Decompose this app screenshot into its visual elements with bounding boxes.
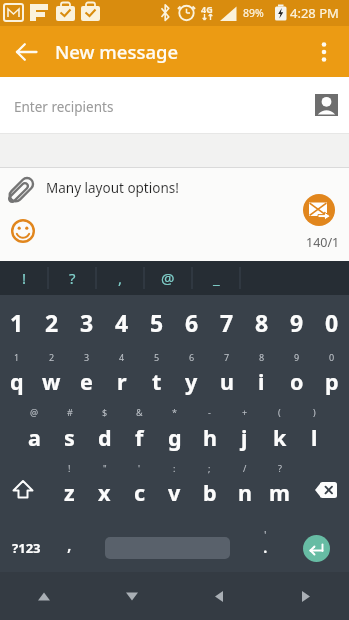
button[interactable]: "	[87, 461, 122, 516]
staticText: .	[263, 535, 268, 558]
staticText: +	[242, 406, 248, 418]
button[interactable]: 9	[279, 350, 314, 405]
staticText: ?	[278, 462, 282, 474]
button[interactable]: &	[122, 405, 157, 461]
button[interactable]: 1	[0, 350, 34, 405]
button[interactable]: 3	[69, 295, 104, 350]
staticText: g	[168, 423, 182, 452]
staticText: 5	[154, 351, 160, 363]
button[interactable]	[303, 194, 335, 226]
staticText: _	[213, 268, 220, 288]
button[interactable]: 5	[139, 295, 174, 350]
button[interactable]: 7	[209, 350, 244, 405]
staticText: i	[258, 367, 265, 396]
button[interactable]: *	[157, 405, 192, 461]
staticText: c	[134, 478, 146, 507]
button[interactable]: 5	[139, 350, 174, 405]
button[interactable]: 0	[314, 295, 349, 350]
button[interactable]	[309, 37, 339, 67]
button[interactable]: @	[17, 405, 52, 461]
staticText: -	[208, 406, 211, 418]
button[interactable]	[7, 174, 35, 206]
button[interactable]: '	[248, 516, 283, 572]
button[interactable]	[314, 93, 338, 117]
staticText: a	[28, 423, 41, 452]
button[interactable]	[11, 219, 35, 243]
button[interactable]: 3	[69, 350, 104, 405]
staticText: ,	[67, 533, 72, 556]
staticText: z	[64, 478, 75, 507]
staticText: (	[278, 406, 281, 418]
button[interactable]: !	[52, 461, 87, 516]
button[interactable]: 6	[174, 295, 209, 350]
button[interactable]: 2	[34, 350, 69, 405]
staticText: 9	[294, 351, 300, 363]
button[interactable]: 1	[0, 295, 34, 350]
button[interactable]	[88, 572, 175, 620]
button[interactable]: '	[122, 461, 157, 516]
button[interactable]: ,	[52, 516, 87, 572]
button[interactable]: @	[144, 261, 192, 295]
button[interactable]: ,	[96, 261, 144, 295]
button[interactable]	[0, 461, 52, 516]
staticText: q	[10, 367, 24, 396]
staticText: &	[136, 406, 143, 418]
staticText: 8	[255, 307, 269, 338]
button[interactable]: 4	[104, 295, 139, 350]
button[interactable]	[8, 33, 46, 71]
button[interactable]	[303, 535, 330, 562]
button[interactable]: $	[87, 405, 122, 461]
button[interactable]: 4	[104, 350, 139, 405]
button[interactable]: ?123	[0, 516, 52, 572]
staticText: p	[325, 367, 339, 396]
button[interactable]: ?	[262, 461, 297, 516]
button[interactable]: +	[227, 405, 262, 461]
staticText: 1	[10, 307, 24, 338]
button[interactable]: 2	[34, 295, 69, 350]
staticText: 3	[80, 307, 94, 338]
staticText: ?	[69, 268, 76, 288]
button[interactable]: #	[52, 405, 87, 461]
staticText: s	[64, 423, 75, 452]
button[interactable]: ?	[48, 261, 96, 295]
button[interactable]	[87, 516, 248, 572]
button[interactable]: 8	[244, 350, 279, 405]
button[interactable]: 8	[244, 295, 279, 350]
staticText: !	[68, 462, 71, 474]
staticText: )	[313, 406, 316, 418]
staticText: f	[135, 423, 144, 452]
staticText: $	[102, 406, 108, 418]
staticText: :	[173, 462, 176, 474]
button[interactable]	[0, 572, 88, 620]
staticText: 6	[185, 307, 199, 338]
button[interactable]: Enter recipients	[0, 77, 349, 133]
button[interactable]: )	[297, 405, 332, 461]
staticText: 3	[84, 351, 90, 363]
button[interactable]: _	[192, 261, 240, 295]
staticText: 7	[224, 351, 230, 363]
button[interactable]: :	[157, 461, 192, 516]
staticText: w	[42, 367, 61, 396]
button[interactable]: !	[0, 261, 48, 295]
button[interactable]: -	[192, 405, 227, 461]
button[interactable]	[175, 572, 262, 620]
staticText: @	[161, 268, 175, 288]
staticText: e	[80, 367, 93, 396]
button[interactable]: 7	[209, 295, 244, 350]
staticText: l	[311, 423, 318, 452]
staticText: #	[67, 406, 73, 418]
button[interactable]: 9	[279, 295, 314, 350]
staticText: '	[138, 462, 141, 474]
staticText: 89%	[243, 6, 264, 20]
staticText: k	[273, 423, 287, 452]
button[interactable]	[262, 572, 349, 620]
staticText: 5	[150, 307, 164, 338]
button[interactable]: 6	[174, 350, 209, 405]
button[interactable]: (	[262, 405, 297, 461]
staticText: 4	[119, 351, 125, 363]
button[interactable]	[297, 461, 349, 516]
button[interactable]: 0	[314, 350, 349, 405]
button[interactable]: ;	[192, 461, 227, 516]
staticText: New message	[55, 39, 179, 64]
button[interactable]: /	[227, 461, 262, 516]
